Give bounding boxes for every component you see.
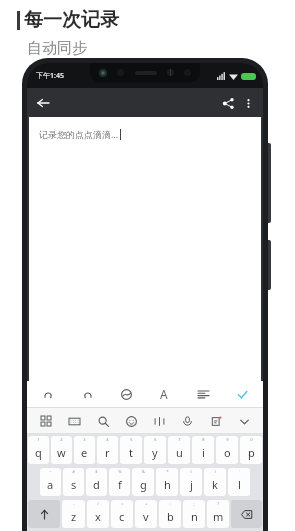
staticText: c xyxy=(119,509,125,524)
button[interactable]: 6 xyxy=(144,436,166,464)
staticText: 记录您的点点滴滴... xyxy=(39,128,119,140)
button[interactable]: 0 xyxy=(240,436,262,464)
button[interactable]: Hide keyboard xyxy=(233,410,255,432)
staticText: h xyxy=(164,477,171,492)
staticText: ( xyxy=(190,469,192,474)
button[interactable]: Back xyxy=(33,93,53,113)
staticText: ; xyxy=(193,501,195,506)
staticText: - xyxy=(73,501,75,506)
button[interactable]: ( xyxy=(180,468,202,496)
staticText: i xyxy=(202,445,205,460)
staticText: a xyxy=(47,477,54,492)
staticText: A xyxy=(160,386,168,402)
staticText: o xyxy=(224,445,231,460)
staticText: p xyxy=(248,445,255,460)
staticText: * xyxy=(166,469,169,474)
staticText: 自动同步 xyxy=(27,39,87,58)
button[interactable]: 8 xyxy=(192,436,214,464)
button[interactable]: Share xyxy=(218,93,238,113)
staticText: : xyxy=(169,501,171,506)
button[interactable]: # xyxy=(63,468,84,496)
button[interactable]: ~ xyxy=(40,468,61,496)
button[interactable]: Emoji xyxy=(120,410,142,432)
button[interactable]: & xyxy=(132,468,154,496)
button[interactable]: Voice input xyxy=(176,410,198,432)
staticText: 下午1:45 xyxy=(36,71,64,81)
button[interactable]: * xyxy=(156,468,178,496)
button[interactable]: Undo xyxy=(37,383,59,405)
button[interactable]: - xyxy=(62,500,85,528)
staticText: 7 xyxy=(178,437,181,442)
button[interactable]: Handwriting xyxy=(205,410,227,432)
staticText: w xyxy=(57,445,66,460)
staticText: g xyxy=(140,477,147,492)
button[interactable]: % xyxy=(109,468,130,496)
button[interactable]: ? xyxy=(207,500,229,528)
staticText: t xyxy=(129,445,133,460)
staticText: 5 xyxy=(130,437,133,442)
button[interactable]: 3 xyxy=(74,436,95,464)
staticText: 4 xyxy=(106,437,109,442)
button[interactable]: Shift xyxy=(28,500,60,528)
button[interactable]: Insert image xyxy=(115,383,137,405)
staticText: m xyxy=(213,509,224,524)
staticText: j xyxy=(190,477,193,492)
staticText: 3 xyxy=(83,437,86,442)
button[interactable]: 1 xyxy=(28,436,49,464)
staticText: l xyxy=(238,477,241,492)
button[interactable]: Done xyxy=(231,383,253,405)
button[interactable]: More options xyxy=(238,93,258,113)
button[interactable]: Backspace xyxy=(231,500,262,528)
staticText: 6 xyxy=(154,437,157,442)
staticText: d xyxy=(93,477,100,492)
button[interactable]: Text style xyxy=(153,383,175,405)
staticText: x xyxy=(95,509,101,524)
button[interactable]: 2 xyxy=(51,436,72,464)
staticText: % xyxy=(118,469,122,474)
staticText: b xyxy=(167,509,174,524)
button[interactable]: Search xyxy=(92,410,114,432)
staticText: 9 xyxy=(226,437,229,442)
staticText: 0 xyxy=(250,437,253,442)
staticText: # xyxy=(72,469,75,474)
button[interactable]: 4 xyxy=(97,436,118,464)
staticText: e xyxy=(81,445,88,460)
button[interactable]: Redo xyxy=(76,383,98,405)
staticText: + xyxy=(145,501,148,506)
staticText: 8 xyxy=(202,437,205,442)
button[interactable]: : xyxy=(159,500,181,528)
button[interactable]: ' xyxy=(228,468,250,496)
button[interactable]: ) xyxy=(204,468,226,496)
button[interactable]: 7 xyxy=(168,436,190,464)
button[interactable]: Keyboard xyxy=(63,410,85,432)
staticText: q xyxy=(35,445,42,460)
button[interactable]: 5 xyxy=(120,436,142,464)
staticText: y xyxy=(152,445,158,460)
button[interactable]: $ xyxy=(86,468,107,496)
staticText: n xyxy=(191,509,198,524)
button[interactable]: Clipboard xyxy=(148,410,170,432)
staticText: & xyxy=(142,469,145,474)
staticText: k xyxy=(212,477,218,492)
staticText: 2 xyxy=(60,437,63,442)
staticText: 每一次记录 xyxy=(24,8,119,32)
staticText: 1 xyxy=(37,437,40,442)
staticText: f xyxy=(118,477,122,492)
button[interactable]: = xyxy=(111,500,133,528)
staticText: z xyxy=(71,509,77,524)
button[interactable]: ; xyxy=(183,500,205,528)
button[interactable]: Align xyxy=(192,383,214,405)
staticText: / xyxy=(97,501,99,506)
staticText: ~ xyxy=(49,469,52,474)
staticText: u xyxy=(176,445,183,460)
button[interactable]: + xyxy=(135,500,157,528)
button[interactable]: Apps xyxy=(35,410,57,432)
staticText: s xyxy=(71,477,77,492)
staticText: ? xyxy=(217,501,219,506)
button[interactable]: / xyxy=(87,500,109,528)
staticText: $ xyxy=(95,469,98,474)
staticText: ' xyxy=(239,469,240,474)
staticText: = xyxy=(121,501,124,506)
button[interactable]: 9 xyxy=(216,436,238,464)
staticText: v xyxy=(143,509,149,524)
